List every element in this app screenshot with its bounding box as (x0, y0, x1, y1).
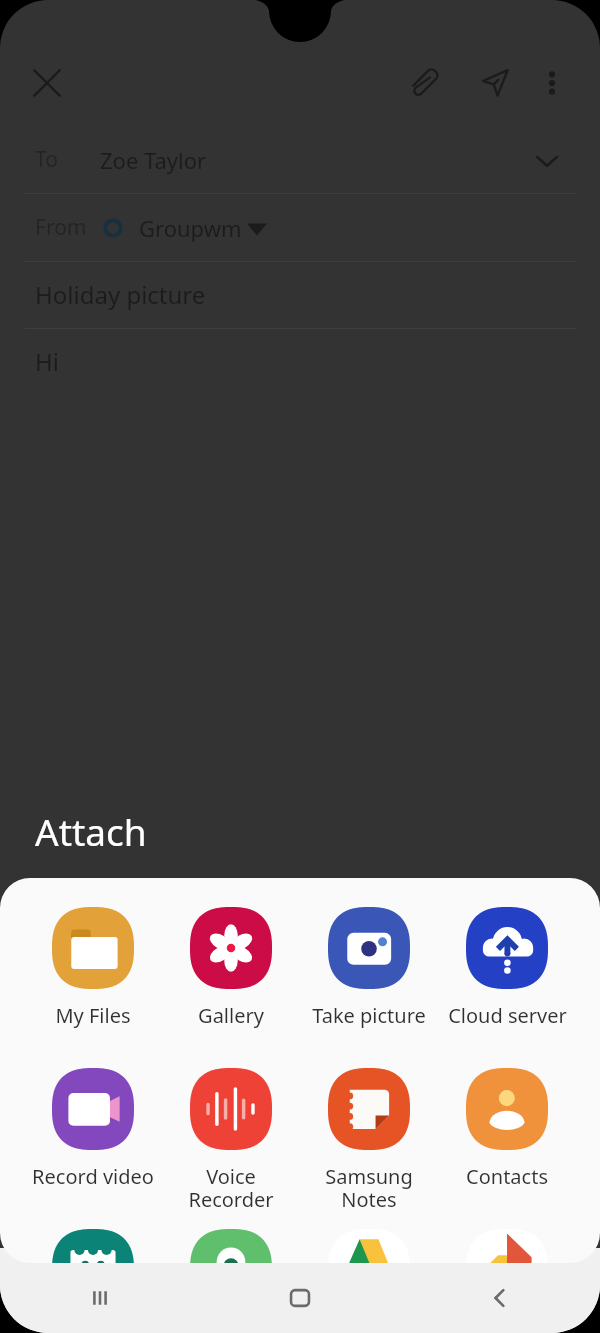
button[interactable]: Samsung Notes (300, 1056, 438, 1213)
button[interactable]: Home (200, 1263, 400, 1333)
staticText: Gallery (198, 1002, 264, 1029)
staticText: My Files (55, 1002, 131, 1029)
staticText: Hi (35, 345, 59, 378)
button[interactable]: Send (469, 56, 523, 110)
staticText: Groupwm (139, 213, 242, 243)
staticText: Contacts (466, 1163, 548, 1190)
staticText: Take picture (312, 1002, 426, 1029)
button[interactable] (24, 1217, 162, 1263)
button[interactable] (438, 1217, 576, 1263)
button[interactable]: Attach file (399, 56, 453, 110)
button[interactable]: Holiday picture (0, 261, 600, 328)
staticText: From (35, 213, 87, 242)
button[interactable]: Voice Recorder (162, 1056, 300, 1213)
button[interactable]: Recent apps (0, 1263, 200, 1333)
button[interactable]: Take picture (300, 895, 438, 1029)
button[interactable]: From (0, 194, 600, 261)
button[interactable]: My Files (24, 895, 162, 1029)
button[interactable]: More options (526, 57, 578, 109)
button[interactable] (300, 1217, 438, 1263)
staticText: Cloud server (448, 1002, 567, 1029)
staticText: Attach (35, 806, 147, 856)
button[interactable]: Contacts (438, 1056, 576, 1190)
staticText: Record video (32, 1163, 154, 1190)
staticText: Holiday picture (35, 278, 206, 311)
staticText: Voice Recorder (188, 1163, 274, 1213)
staticText: Zoe Taylor (100, 145, 207, 175)
button[interactable]: Record video (24, 1056, 162, 1190)
button[interactable]: Gallery (162, 895, 300, 1029)
button[interactable] (162, 1217, 300, 1263)
button[interactable]: Close (21, 57, 73, 109)
button[interactable]: Cloud server (438, 895, 576, 1029)
staticText: To (35, 145, 58, 174)
staticText: Samsung Notes (325, 1163, 413, 1213)
button[interactable]: Back (400, 1263, 600, 1333)
